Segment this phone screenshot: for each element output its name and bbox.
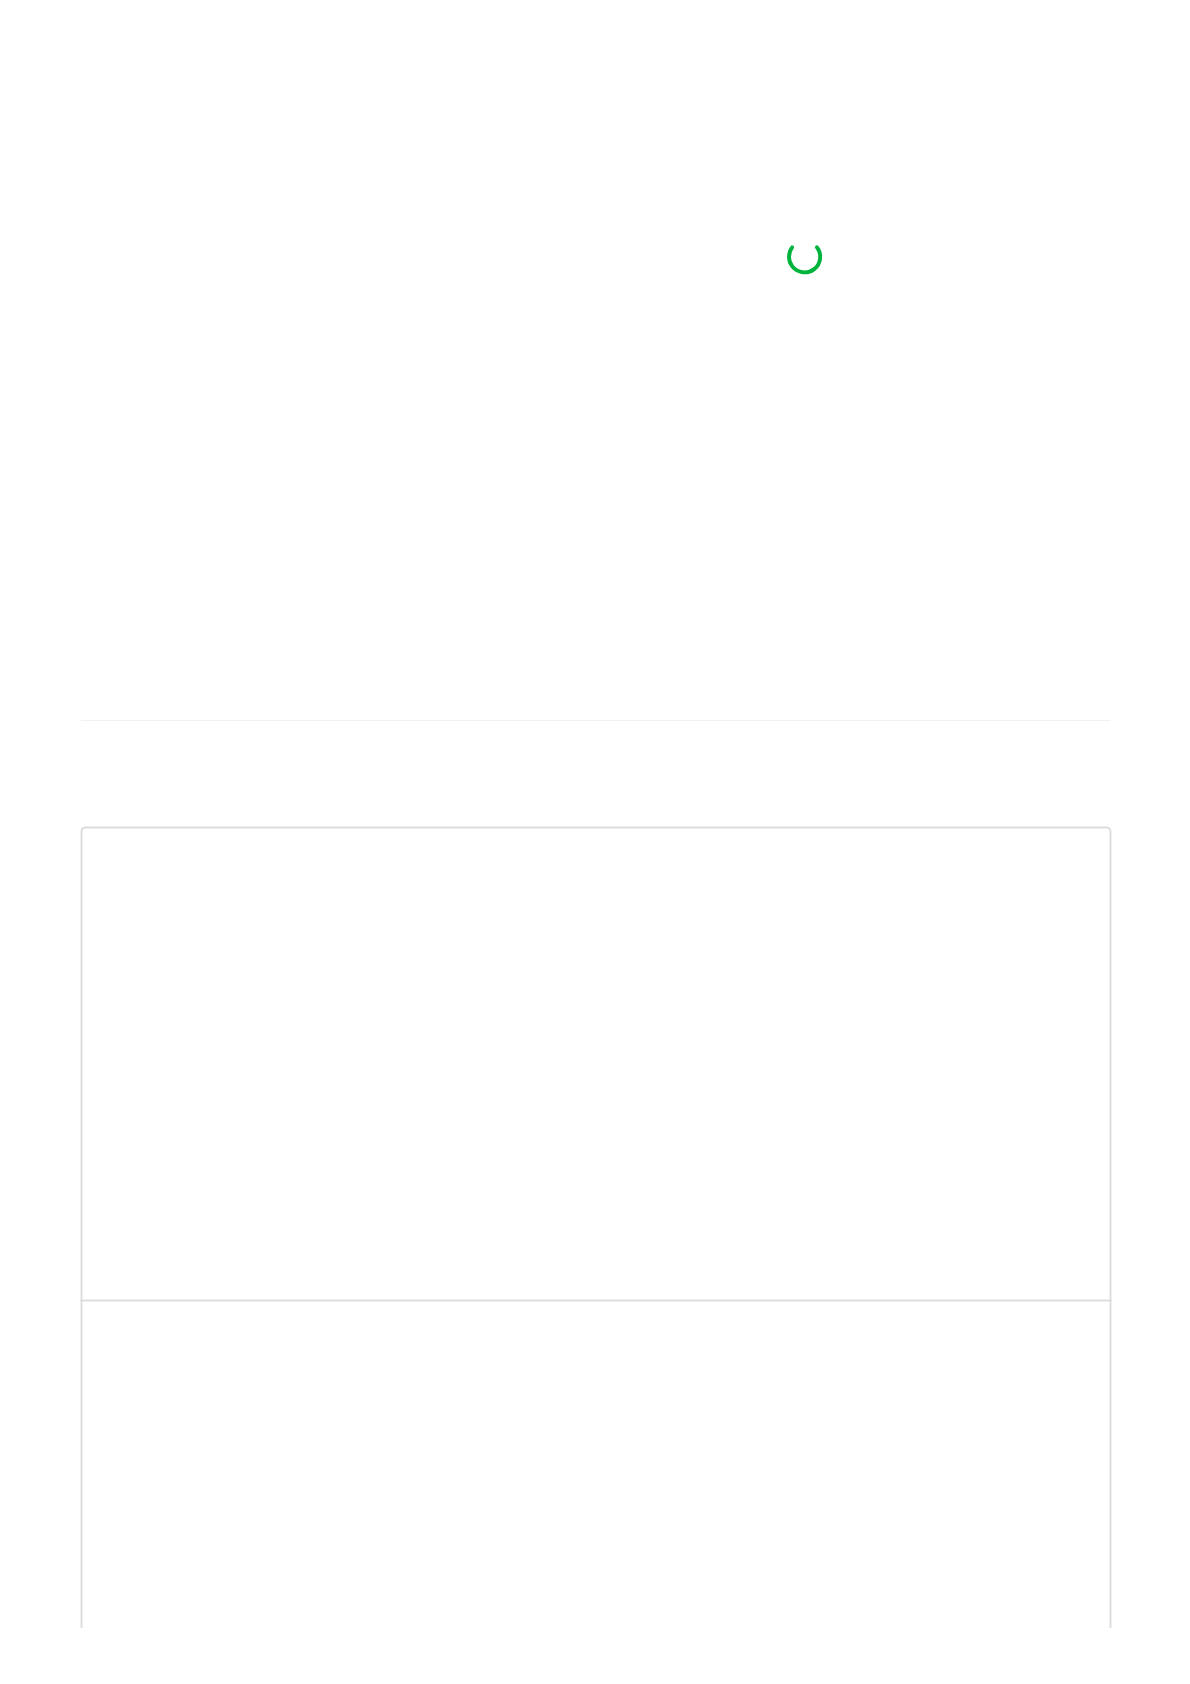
- other: Loading: [783, 235, 827, 279]
